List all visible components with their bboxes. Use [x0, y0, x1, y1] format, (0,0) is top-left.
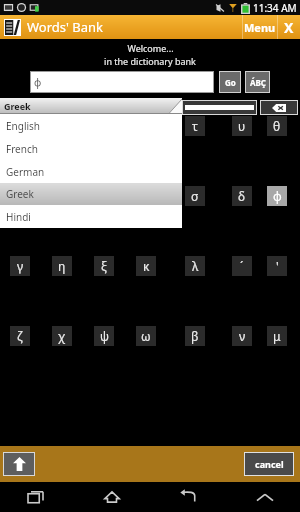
- staticText: German: [6, 165, 45, 179]
- button[interactable]: ω: [136, 326, 156, 346]
- staticText: θ: [273, 118, 281, 134]
- staticText: σ: [191, 188, 199, 204]
- button[interactable]: ξ: [94, 256, 114, 276]
- staticText: ν: [239, 328, 246, 344]
- staticText: φ: [34, 75, 42, 89]
- button[interactable]: Back: [171, 482, 205, 512]
- button[interactable]: γ: [10, 256, 30, 276]
- button[interactable]: ζ: [10, 326, 30, 346]
- button[interactable]: ': [267, 256, 287, 276]
- staticText: τ: [192, 118, 198, 134]
- staticText: δ: [238, 188, 246, 204]
- staticText: Hindi: [6, 210, 31, 224]
- button[interactable]: Recents: [18, 482, 52, 512]
- staticText: Menu: [244, 20, 276, 35]
- button[interactable]: X: [278, 15, 300, 39]
- staticText: χ: [58, 328, 66, 344]
- staticText: λ: [192, 258, 199, 274]
- staticText: υ: [238, 118, 246, 134]
- button[interactable]: Expand: [248, 482, 282, 512]
- button[interactable]: Greek: [0, 98, 182, 113]
- button[interactable]: η: [52, 256, 72, 276]
- button[interactable]: Go: [219, 71, 241, 93]
- button[interactable]: ψ: [94, 326, 114, 346]
- staticText: ω: [141, 328, 151, 344]
- button[interactable]: Home: [95, 482, 129, 512]
- staticText: μ: [273, 328, 281, 344]
- button[interactable]: β: [185, 326, 205, 346]
- button[interactable]: ÁBÇ: [245, 71, 270, 93]
- staticText: β: [191, 328, 199, 344]
- staticText: γ: [17, 258, 24, 274]
- button[interactable]: τ: [185, 116, 205, 136]
- staticText: ξ: [101, 258, 107, 274]
- staticText: X: [284, 18, 294, 37]
- button[interactable]: Backspace: [260, 100, 298, 115]
- button[interactable]: Greek: [0, 183, 182, 205]
- staticText: ζ: [17, 328, 23, 344]
- button[interactable]: υ: [232, 116, 252, 136]
- staticText: cancel: [255, 458, 284, 470]
- button[interactable]: σ: [185, 186, 205, 206]
- staticText: κ: [143, 258, 150, 274]
- staticText: French: [6, 142, 38, 156]
- button[interactable]: θ: [267, 116, 287, 136]
- button[interactable]: κ: [136, 256, 156, 276]
- button[interactable]: φ: [267, 186, 287, 206]
- staticText: ´: [240, 258, 244, 274]
- staticText: 11:34 AM: [253, 1, 297, 15]
- staticText: Words' Bank: [27, 18, 104, 36]
- button[interactable]: French: [0, 137, 182, 160]
- staticText: English: [6, 119, 41, 133]
- button[interactable]: German: [0, 160, 182, 183]
- button[interactable]: Menu: [243, 15, 277, 39]
- button[interactable]: ν: [232, 326, 252, 346]
- button[interactable]: λ: [185, 256, 205, 276]
- staticText: φ: [273, 188, 282, 204]
- button[interactable]: φ: [30, 71, 214, 93]
- button[interactable]: χ: [52, 326, 72, 346]
- staticText: η: [58, 258, 66, 274]
- button[interactable]: ´: [232, 256, 252, 276]
- button[interactable]: μ: [267, 326, 287, 346]
- staticText: ψ: [100, 328, 109, 344]
- staticText: Welcome...: [127, 42, 174, 54]
- button[interactable]: cancel: [244, 452, 294, 476]
- staticText: in the dictionary bank: [104, 55, 196, 67]
- button[interactable]: Space: [182, 100, 257, 115]
- staticText: Go: [225, 77, 236, 88]
- button[interactable]: δ: [232, 186, 252, 206]
- button[interactable]: Hindi: [0, 205, 182, 228]
- button[interactable]: English: [0, 114, 182, 137]
- staticText: Greek: [4, 100, 31, 112]
- staticText: ÁBÇ: [250, 77, 266, 88]
- staticText: Greek: [6, 187, 34, 201]
- button[interactable]: Up: [3, 452, 35, 476]
- staticText: ': [276, 258, 279, 274]
